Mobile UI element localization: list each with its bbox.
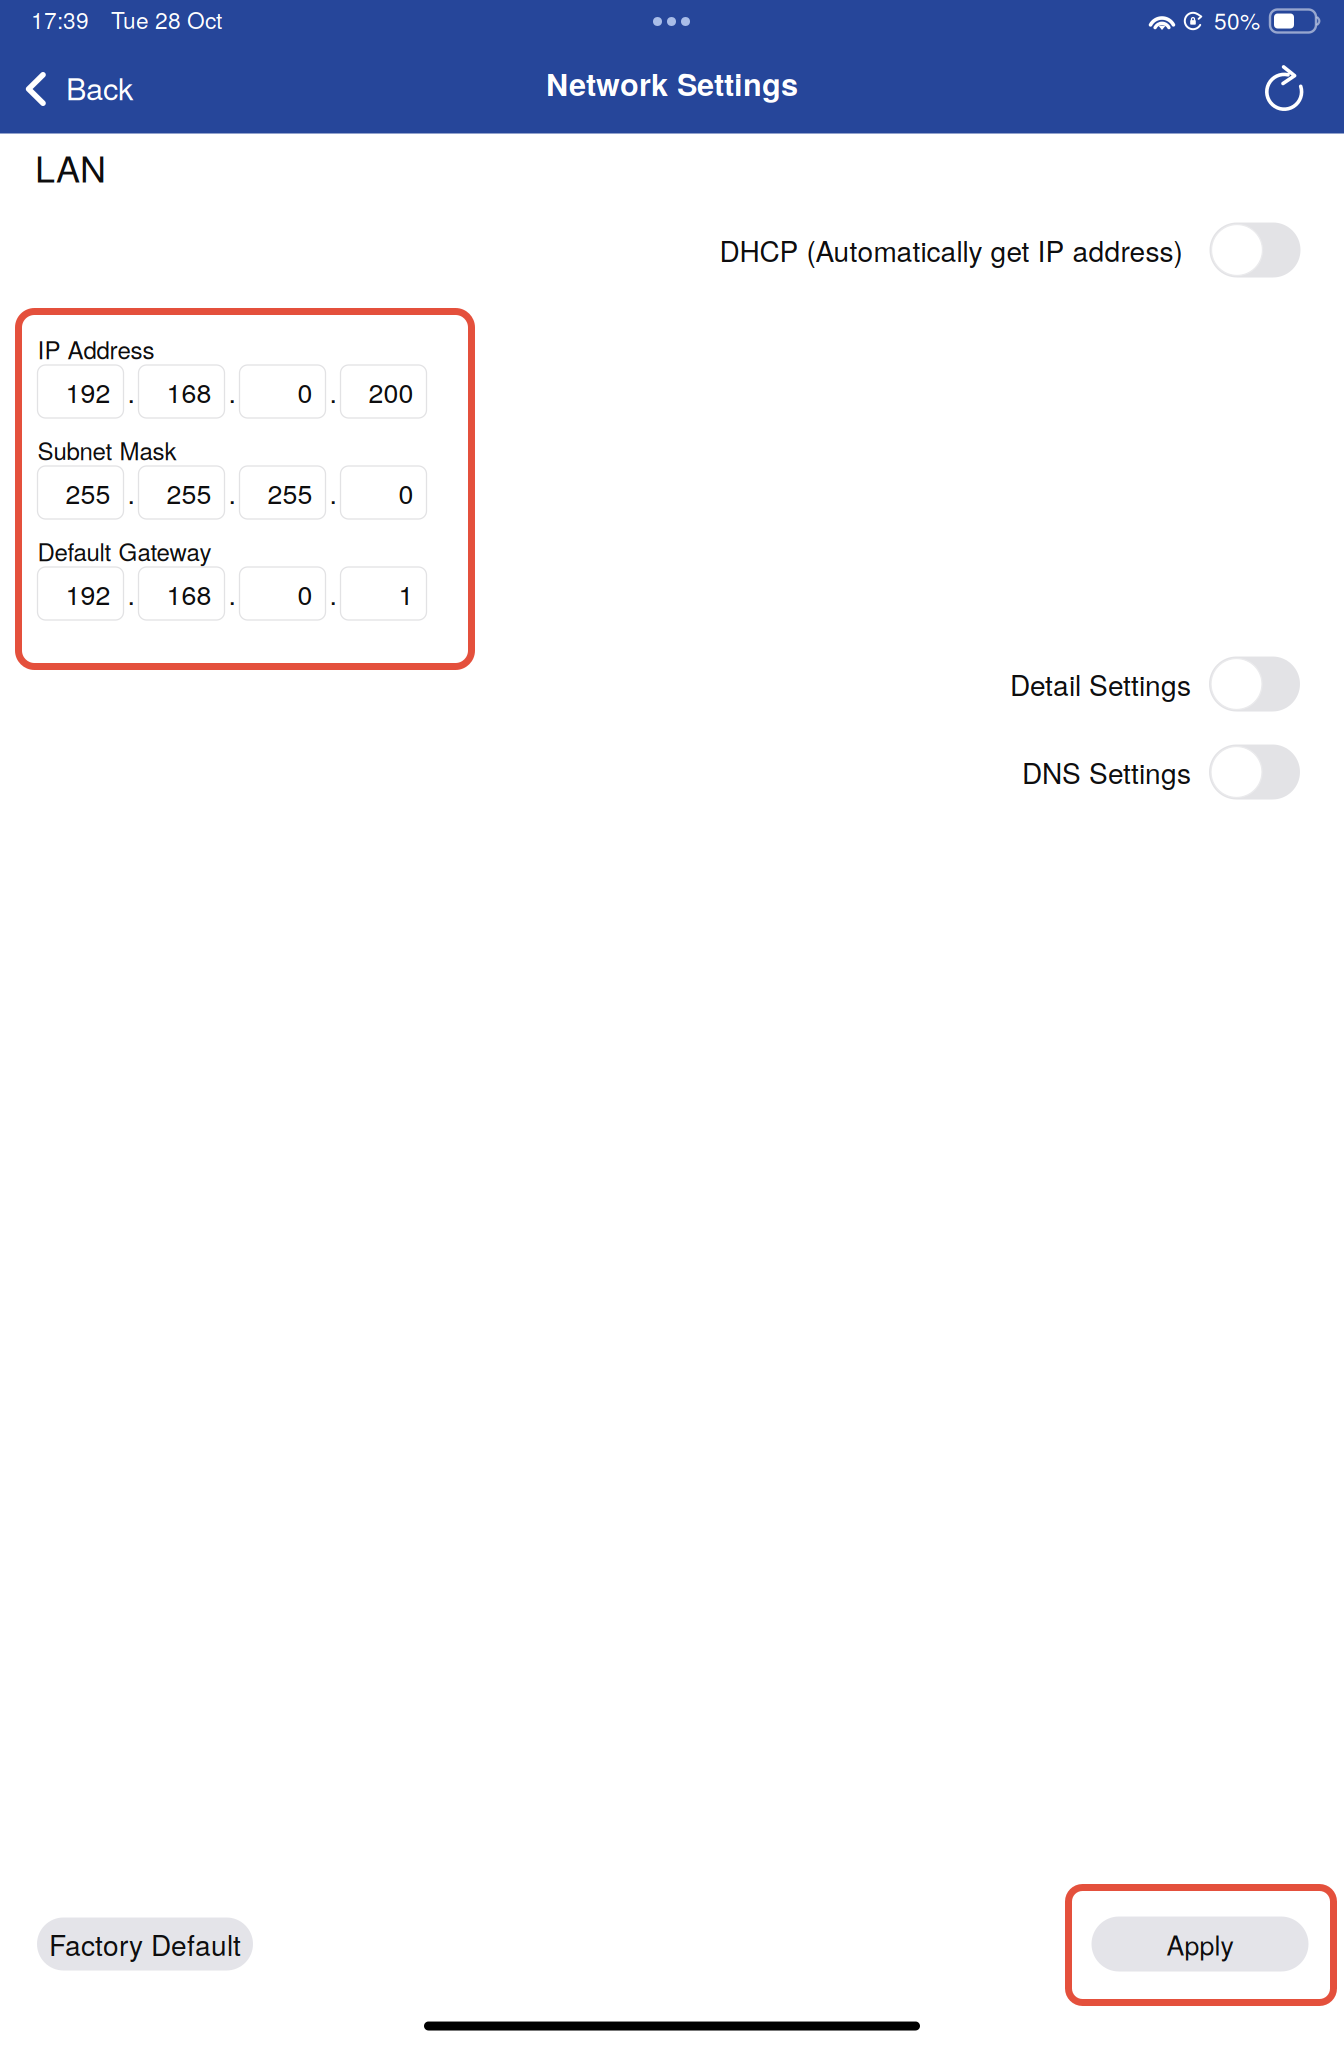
staticText: 50% [1214, 4, 1260, 36]
button[interactable]: DHCP (Automatically get IP address) [719, 222, 1300, 277]
staticText: . [329, 574, 336, 613]
button[interactable]: DNS Settings [1022, 744, 1300, 799]
staticText: . [127, 574, 134, 613]
staticText: 0 [297, 372, 312, 411]
staticText: . [228, 372, 235, 411]
staticText: 200 [368, 372, 413, 411]
staticText: Detail Settings [1010, 664, 1191, 704]
staticText: . [329, 473, 336, 512]
staticText: LAN [35, 141, 106, 193]
staticText: . [228, 574, 235, 613]
staticText: Default Gateway [37, 534, 211, 568]
staticText: . [329, 372, 336, 411]
staticText: Subnet Mask [37, 433, 176, 467]
staticText: DHCP (Automatically get IP address) [719, 230, 1182, 270]
staticText: IP Address [37, 332, 154, 366]
staticText: Back [66, 65, 133, 109]
staticText: DNS Settings [1022, 752, 1191, 792]
staticText: Apply [1166, 1925, 1233, 1963]
staticText: 255 [267, 473, 312, 512]
staticText: . [127, 473, 134, 512]
button[interactable]: Apply [1091, 1916, 1308, 1971]
staticText: Network Settings [546, 61, 798, 105]
staticText: Factory Default [49, 1924, 241, 1964]
staticText: . [228, 473, 235, 512]
staticText: 255 [65, 473, 110, 512]
staticText: 192 [65, 574, 110, 613]
button[interactable]: Detail Settings [1010, 656, 1300, 711]
staticText: 168 [166, 574, 211, 613]
staticText: 0 [398, 473, 413, 512]
staticText: 168 [166, 372, 211, 411]
button[interactable]: Back [0, 44, 153, 133]
staticText: Tue 28 Oct [111, 3, 222, 35]
staticText: 1 [398, 574, 413, 613]
staticText: 192 [65, 372, 110, 411]
staticText: 0 [297, 574, 312, 613]
staticText: 17:39 [31, 3, 89, 35]
staticText: . [127, 372, 134, 411]
button[interactable]: Factory Default [37, 1917, 253, 1970]
staticText: 255 [166, 473, 211, 512]
button[interactable]: Refresh [1241, 44, 1329, 133]
